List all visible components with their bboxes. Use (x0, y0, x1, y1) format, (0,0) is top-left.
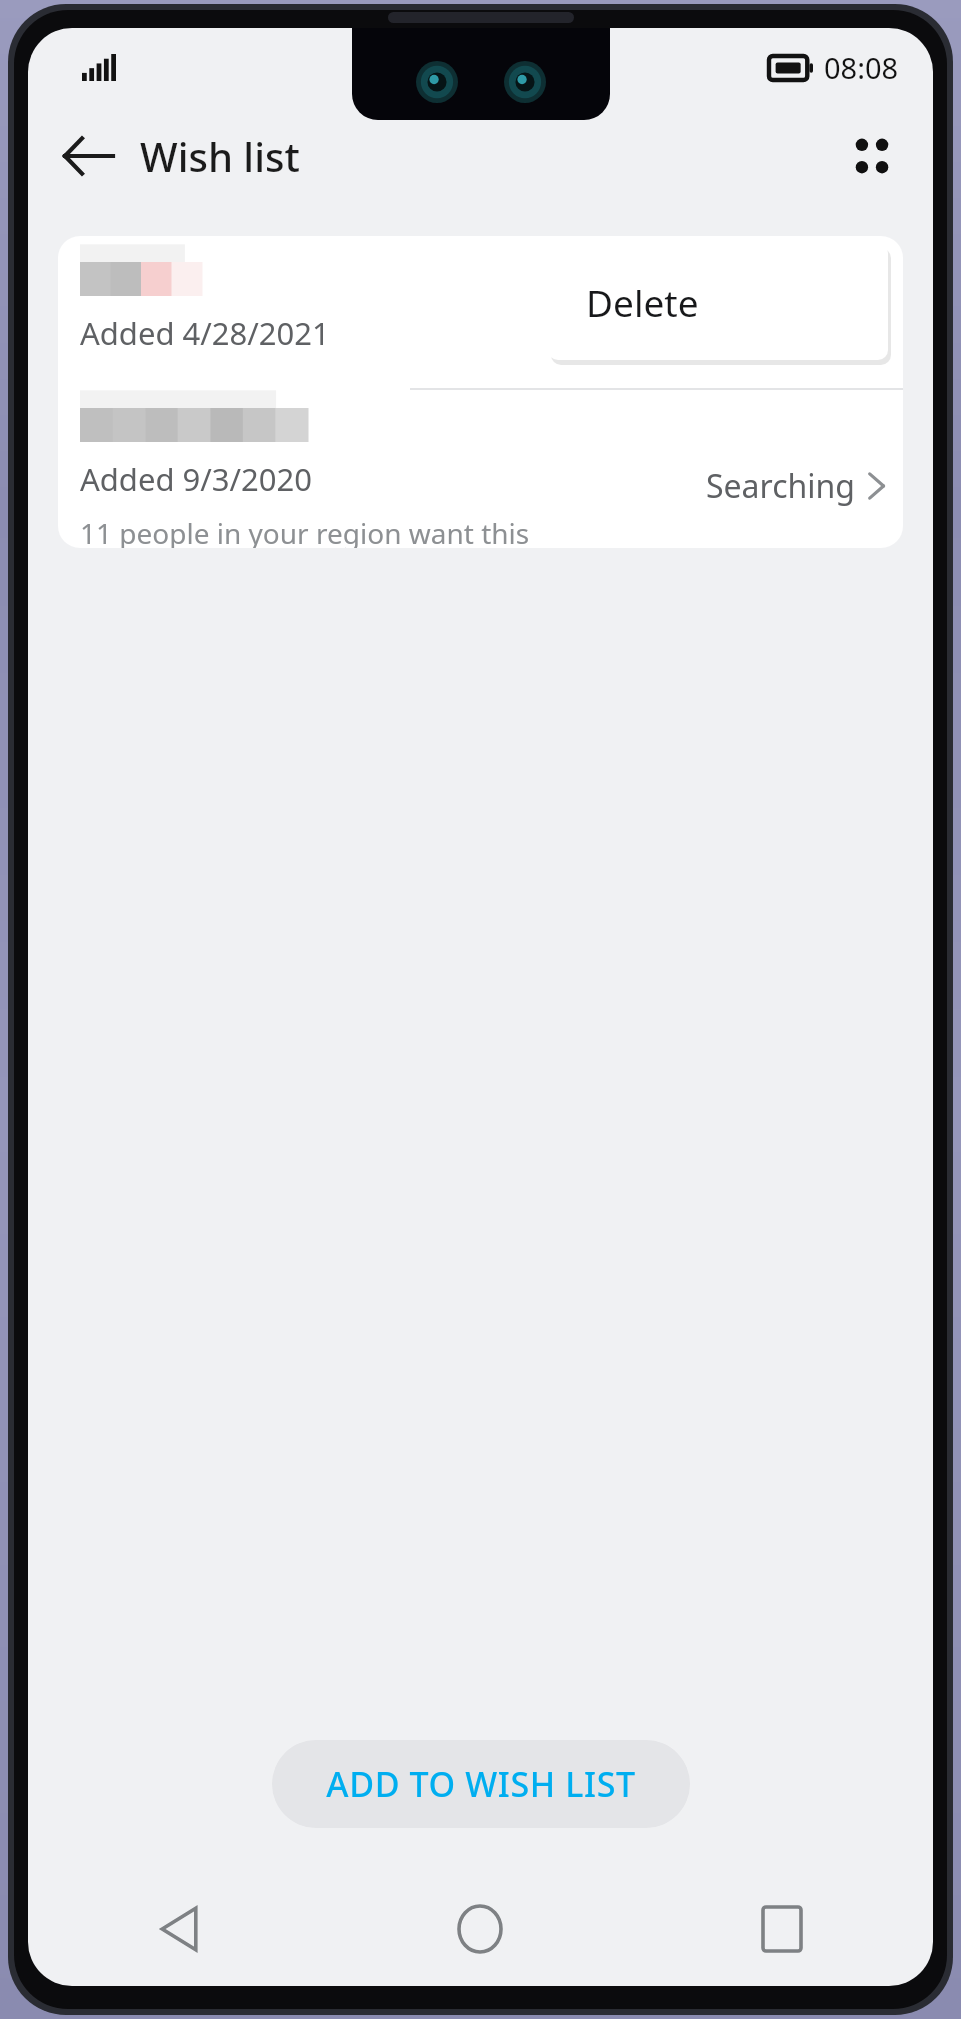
staticText: 11 people in your region want this (80, 514, 530, 548)
staticText: ADD TO WISH LIST (326, 1761, 636, 1807)
staticText: Added 4/28/2021 (80, 312, 330, 354)
button[interactable]: More options (835, 119, 909, 193)
button[interactable]: Back (28, 1886, 329, 1972)
button[interactable]: Recent apps (631, 1886, 933, 1972)
staticText: Delete (586, 277, 699, 327)
button[interactable]: Added 9/3/2020 (58, 390, 903, 548)
staticText: Wish list (140, 129, 300, 183)
button[interactable]: Back (54, 122, 122, 190)
button[interactable]: Added 4/28/2021 (58, 236, 903, 388)
staticText: Searching (706, 464, 855, 508)
button[interactable]: Delete (548, 243, 888, 360)
button[interactable]: ADD TO WISH LIST (272, 1740, 690, 1828)
staticText: Added 9/3/2020 (80, 458, 313, 500)
staticText: 08:08 (824, 48, 899, 87)
button[interactable]: Home (329, 1886, 631, 1972)
